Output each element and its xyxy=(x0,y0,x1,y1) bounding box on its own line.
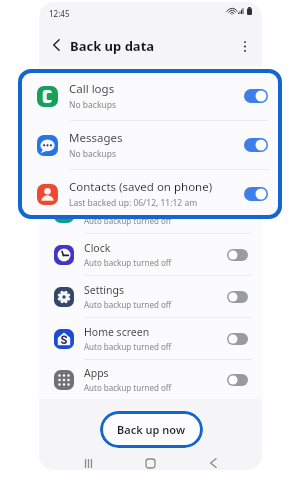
staticText: Clock xyxy=(84,241,111,255)
staticText: Messages xyxy=(69,130,123,146)
button[interactable]: Clock xyxy=(39,234,262,275)
button[interactable]: Call logs xyxy=(18,72,282,120)
button[interactable]: Settings xyxy=(39,276,262,317)
staticText: Last backed up: 06/12, 11:12 am xyxy=(69,197,198,209)
staticText: Calendar xyxy=(84,199,129,213)
button[interactable]: More options xyxy=(233,34,257,58)
button[interactable]: Contacts xyxy=(39,150,262,191)
staticText: No backups xyxy=(69,99,116,111)
staticText: No backups xyxy=(84,89,129,100)
staticText: Contacts xyxy=(84,157,128,171)
staticText: No backups xyxy=(69,148,116,160)
staticText: Back up data xyxy=(70,37,155,55)
button[interactable]: Recent apps xyxy=(78,453,98,470)
button[interactable]: On xyxy=(227,81,248,93)
staticText: No backups xyxy=(84,131,129,142)
button[interactable]: On xyxy=(244,89,268,103)
staticText: Call logs xyxy=(69,81,115,97)
staticText: Home screen xyxy=(84,325,150,339)
staticText: Auto backup turned off xyxy=(84,257,172,268)
button[interactable]: Call logs xyxy=(39,66,262,107)
button[interactable]: Off xyxy=(227,207,248,219)
button[interactable]: Contacts (saved on phone) xyxy=(18,170,282,218)
staticText: Last backed up: 06/12 xyxy=(84,173,166,184)
staticText: Auto backup turned off xyxy=(84,341,172,352)
button[interactable]: Home screen xyxy=(39,318,262,359)
button[interactable]: On xyxy=(244,187,268,201)
button[interactable]: Off xyxy=(227,374,248,386)
button[interactable]: Off xyxy=(227,333,248,345)
button[interactable]: Back xyxy=(203,453,223,470)
staticText: Back up now xyxy=(117,422,186,437)
button[interactable]: On xyxy=(227,165,248,177)
button[interactable]: On xyxy=(244,138,268,152)
button[interactable]: Navigate up xyxy=(44,33,68,57)
staticText: Auto backup turned off xyxy=(84,299,172,310)
staticText: Auto backup turned off xyxy=(84,215,172,226)
staticText: Auto backup turned off xyxy=(84,382,172,393)
staticText: 12:45 xyxy=(49,8,70,19)
staticText: Settings xyxy=(84,283,124,297)
button[interactable]: Messages xyxy=(18,121,282,169)
button[interactable]: Back up now xyxy=(100,411,203,448)
staticText: Messages xyxy=(84,115,133,129)
staticText: Contacts (saved on phone) xyxy=(69,179,213,195)
button[interactable]: Off xyxy=(227,291,248,303)
staticText: Call logs xyxy=(84,73,126,87)
button[interactable]: Home xyxy=(140,453,160,470)
button[interactable]: Off xyxy=(227,249,248,261)
button[interactable]: Calendar xyxy=(39,192,262,233)
button[interactable]: Apps xyxy=(39,360,262,399)
button[interactable]: Messages xyxy=(39,108,262,149)
staticText: Apps xyxy=(84,366,109,380)
